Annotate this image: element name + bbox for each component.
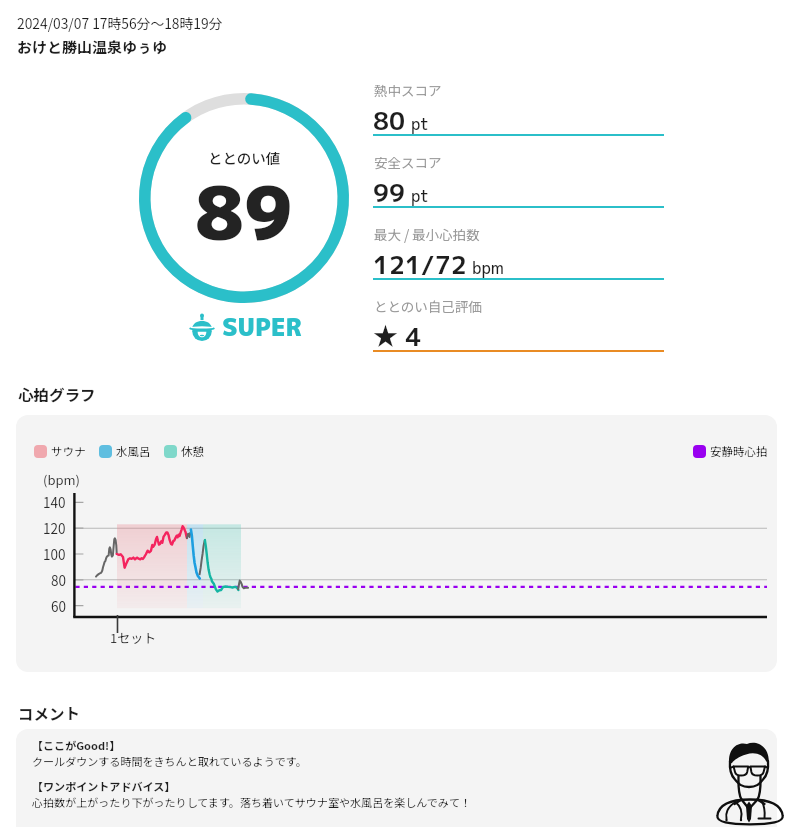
staticText: 心拍数が上がったり下がったりしてます。落ち着いてサウナ室や水風呂を楽しんでみて！ (32, 794, 472, 810)
staticText: 1セット (110, 628, 157, 647)
staticText: ととのい自己評価 (374, 296, 482, 316)
staticText: (bpm) (43, 470, 80, 489)
staticText: 99 (373, 175, 406, 210)
staticText: 100 (43, 544, 66, 564)
button[interactable]: 熱中スコア (373, 77, 664, 149)
staticText: ★ 4 (373, 319, 422, 354)
staticText: 熱中スコア (374, 80, 442, 100)
staticText: bpm (472, 257, 504, 279)
staticText: 安静時心拍 (710, 443, 768, 460)
staticText: コメント (18, 702, 81, 724)
button[interactable]: 安全スコア (373, 149, 664, 221)
button[interactable]: ととのい自己評価 (373, 293, 664, 365)
staticText: クールダウンする時間をきちんと取れているようです。 (32, 753, 307, 769)
staticText: 80 (51, 570, 66, 590)
staticText: 60 (51, 596, 66, 616)
staticText: 89 (195, 160, 293, 263)
button[interactable]: SUPER rating (187, 310, 302, 343)
button[interactable]: 最大 / 最小心拍数 (373, 221, 664, 293)
staticText: サウナ (51, 443, 86, 460)
staticText: 121/72 (373, 247, 467, 282)
staticText: pt (411, 113, 429, 135)
staticText: pt (411, 185, 429, 207)
staticText: 最大 / 最小心拍数 (374, 224, 480, 244)
staticText: おけと勝山温泉ゆぅゆ (17, 36, 168, 58)
staticText: 休憩 (181, 443, 204, 460)
staticText: 【ここがGood!】 (32, 737, 121, 753)
staticText: SUPER (222, 310, 302, 343)
staticText: 水風呂 (116, 443, 151, 460)
staticText: 120 (43, 518, 66, 538)
staticText: ととのい値 (208, 147, 281, 168)
staticText: 2024/03/07 17時56分〜18時19分 (17, 13, 223, 33)
staticText: 安全スコア (374, 152, 442, 172)
staticText: 80 (373, 103, 406, 138)
other: Doctor advice avatar (713, 741, 788, 827)
staticText: 140 (43, 492, 66, 512)
staticText: 【ワンポイントアドバイス】 (32, 778, 176, 794)
staticText: 心拍グラフ (18, 383, 96, 405)
